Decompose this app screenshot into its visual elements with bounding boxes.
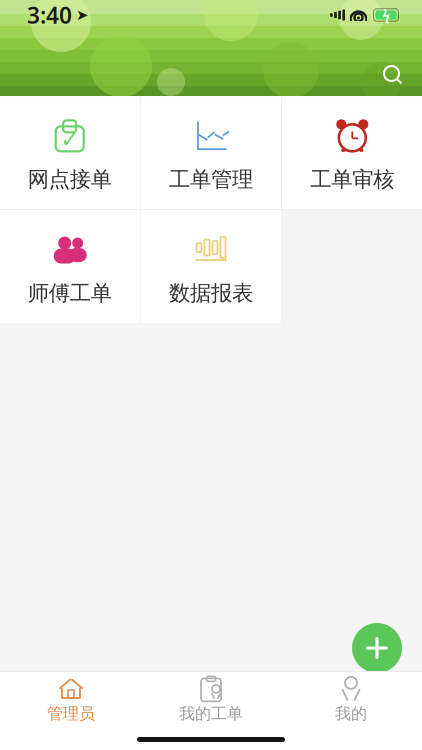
button[interactable]: Search	[376, 58, 410, 92]
button[interactable]: 我的	[281, 672, 421, 728]
staticText: ➤	[76, 7, 88, 23]
staticText: ✓	[60, 126, 79, 152]
staticText: 工单管理	[169, 166, 253, 193]
button[interactable]: 我的工单	[141, 672, 281, 728]
button[interactable]: 师傅工单	[0, 210, 140, 323]
staticText: 我的工单	[179, 704, 243, 724]
staticText: 我的	[335, 704, 367, 724]
button[interactable]: 管理员	[1, 672, 141, 728]
button[interactable]: 数据报表	[141, 210, 281, 323]
staticText: 管理员	[47, 704, 95, 724]
staticText: 师傅工单	[28, 280, 112, 306]
staticText: ϟ	[382, 6, 389, 24]
staticText: 数据报表	[169, 280, 253, 306]
staticText: 3:40	[27, 0, 72, 30]
staticText: 工单审核	[310, 166, 394, 193]
button[interactable]: 工单管理	[141, 96, 281, 209]
button[interactable]: 工单审核	[282, 96, 422, 209]
button[interactable]: ✓	[0, 96, 140, 209]
button[interactable]: Add	[352, 623, 402, 673]
staticText: 网点接单	[28, 166, 112, 193]
